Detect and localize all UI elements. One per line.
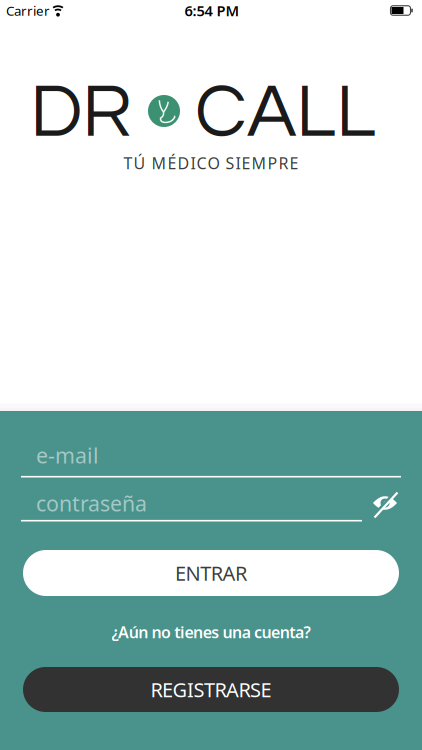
- button[interactable]: Mostrar contraseña: [368, 488, 402, 518]
- button[interactable]: e-mail: [21, 431, 401, 477]
- staticText: TÚ MÉDICO SIEMPRE: [123, 152, 298, 174]
- button[interactable]: contraseña: [21, 475, 401, 521]
- button[interactable]: ENTRAR: [23, 550, 399, 596]
- staticText: 6:54 PM: [184, 1, 239, 20]
- staticText: e-mail: [36, 441, 99, 469]
- staticText: contraseña: [36, 489, 147, 517]
- staticText: Carrier: [6, 2, 50, 19]
- button[interactable]: REGISTRARSE: [23, 667, 399, 712]
- button[interactable]: ¿Aún no tienes una cuenta?: [111, 621, 310, 643]
- staticText: CALL: [195, 74, 376, 151]
- staticText: DR: [30, 74, 132, 151]
- staticText: ENTRAR: [175, 560, 247, 586]
- staticText: ¿Aún no tienes una cuenta?: [111, 621, 310, 643]
- staticText: REGISTRARSE: [150, 676, 271, 703]
